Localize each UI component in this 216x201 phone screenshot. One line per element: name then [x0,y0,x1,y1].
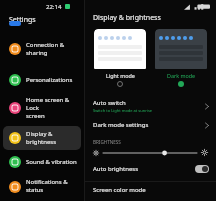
staticText: Connection & sharing [26,41,78,57]
staticText: Settings [9,15,36,25]
button[interactable]: Display & brightness [3,126,81,150]
staticText: Personalizations [26,76,78,84]
staticText: Auto brightness [93,165,195,173]
button[interactable]: Dark mode settings [85,117,216,133]
staticText: Screen color mode [93,186,146,194]
staticText: 22:14 [46,3,62,11]
button[interactable]: Sound & vibration [3,152,81,172]
button[interactable]: Notifications & status bar [3,174,81,200]
button[interactable]: Personalizations [3,70,81,90]
staticText: Auto switch [93,99,126,107]
button[interactable]: Connection & sharing [3,37,81,61]
button[interactable]: Home screen & Lock screen [3,92,81,124]
staticText: BRIGHTNESS [93,139,121,145]
staticText: Notifications & status bar [26,178,78,196]
staticText: Home screen & Lock screen [26,96,78,120]
staticText: Display & brightness [93,13,161,23]
staticText: Light mode [106,72,135,79]
staticText: Switch to Light mode at sunrise [93,108,153,113]
button[interactable]: Auto brightness toggle [195,165,209,173]
button[interactable]: Dark mode [155,29,207,87]
button[interactable]: Auto switch [85,95,216,117]
staticText: Display & brightness [26,130,78,146]
staticText: Dark mode settings [93,121,149,129]
staticText: Sound & vibration [26,158,78,166]
button[interactable]: Light mode [94,29,146,87]
button[interactable]: Auto brightness [85,161,216,177]
staticText: Dark mode [167,72,196,79]
